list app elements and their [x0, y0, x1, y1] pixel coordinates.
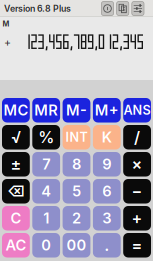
staticText: M-	[66, 101, 87, 119]
button[interactable]: 2	[63, 206, 90, 230]
staticText: 4	[41, 182, 51, 200]
staticText: C	[10, 209, 21, 227]
staticText: +	[132, 209, 143, 228]
button[interactable]: ±	[2, 152, 30, 176]
button[interactable]: 1	[32, 206, 60, 230]
button[interactable]: ⌫	[2, 179, 30, 203]
button[interactable]: +	[123, 206, 151, 230]
staticText: 3	[102, 209, 111, 227]
staticText: ⌫	[7, 182, 25, 200]
button[interactable]: MC	[2, 98, 30, 122]
staticText: ×	[132, 155, 143, 174]
staticText: 8	[72, 155, 81, 173]
staticText: 9	[102, 155, 111, 173]
staticText: 7	[42, 155, 50, 173]
button[interactable]: AC	[2, 233, 30, 257]
button[interactable]: M-	[63, 98, 90, 122]
button[interactable]: %	[32, 125, 60, 149]
staticText: MR	[34, 101, 58, 119]
button[interactable]: −	[123, 179, 151, 203]
staticText: 0	[41, 236, 51, 254]
staticText: K	[102, 128, 112, 146]
button[interactable]: INT	[63, 125, 90, 149]
button[interactable]: 7	[32, 152, 60, 176]
staticText: .	[104, 236, 109, 255]
button[interactable]: .	[93, 233, 121, 257]
button[interactable]: Copy	[117, 1, 129, 15]
button[interactable]: √	[2, 125, 30, 149]
staticText: AC	[5, 236, 26, 254]
button[interactable]: 6	[93, 179, 121, 203]
staticText: 2	[72, 209, 81, 227]
staticText: +	[4, 36, 11, 49]
button[interactable]: 9	[93, 152, 121, 176]
button[interactable]: =	[123, 233, 151, 257]
staticText: M+	[95, 101, 119, 119]
staticText: 5	[72, 182, 81, 200]
button[interactable]: 5	[63, 179, 90, 203]
button[interactable]: K	[93, 125, 121, 149]
staticText: %	[38, 128, 54, 147]
button[interactable]: C	[2, 206, 30, 230]
button[interactable]: 4	[32, 179, 60, 203]
button[interactable]: ANS	[123, 98, 151, 122]
staticText: MC	[3, 101, 28, 119]
staticText: Version 6.8 Plus	[4, 3, 71, 14]
button[interactable]: 3	[93, 206, 121, 230]
staticText: =	[132, 236, 143, 255]
button[interactable]: Info	[101, 1, 114, 15]
button[interactable]: /	[123, 125, 151, 149]
staticText: ANS	[124, 103, 151, 118]
staticText: /	[134, 128, 140, 147]
button[interactable]: 0	[32, 233, 60, 257]
staticText: 00	[66, 236, 86, 254]
staticText: −	[132, 182, 143, 201]
staticText: M	[2, 19, 9, 28]
staticText: √	[11, 128, 21, 147]
button[interactable]: MR	[32, 98, 60, 122]
button[interactable]: ×	[123, 152, 151, 176]
staticText: ±	[10, 155, 21, 174]
staticText: 1	[43, 209, 49, 227]
button[interactable]: 00	[63, 233, 90, 257]
button[interactable]: 8	[63, 152, 90, 176]
staticText: 6	[102, 182, 111, 200]
staticText: INT	[65, 130, 87, 145]
button[interactable]: Settings	[132, 1, 144, 15]
button[interactable]: M+	[93, 98, 121, 122]
